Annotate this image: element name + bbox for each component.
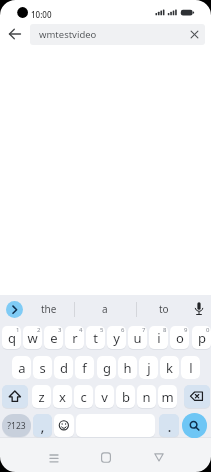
button[interactable]: g	[97, 356, 116, 379]
staticText: 3	[58, 326, 62, 334]
staticText: c	[80, 388, 87, 406]
staticText: x	[59, 388, 66, 406]
button[interactable]: n	[137, 385, 156, 408]
staticText: q	[8, 329, 16, 347]
button[interactable]: t	[86, 326, 105, 349]
button[interactable]: u	[128, 326, 147, 349]
staticText: f	[82, 359, 87, 377]
button[interactable]: d	[54, 356, 73, 379]
staticText: 6	[121, 326, 125, 334]
button[interactable]: j	[139, 356, 158, 379]
staticText: y	[113, 329, 120, 347]
staticText: 8	[163, 326, 167, 334]
button[interactable]	[184, 385, 210, 408]
button[interactable]: s	[33, 356, 52, 379]
staticText: 9	[184, 326, 188, 334]
staticText: to	[159, 302, 169, 316]
button[interactable]: wmtestvideo	[30, 24, 205, 45]
button[interactable]: the	[29, 300, 69, 318]
button[interactable]: f	[75, 356, 94, 379]
button[interactable]: y	[107, 326, 126, 349]
button[interactable]: h	[118, 356, 137, 379]
staticText: s	[39, 359, 46, 377]
staticText: 0	[206, 326, 210, 334]
staticText: o	[176, 329, 184, 347]
staticText: p	[198, 329, 206, 347]
button[interactable]	[96, 448, 116, 468]
button[interactable]	[6, 301, 23, 318]
button[interactable]	[149, 448, 169, 468]
button[interactable]: c	[74, 385, 93, 408]
button[interactable]: p	[192, 326, 211, 349]
staticText: k	[166, 359, 173, 377]
button[interactable]	[54, 414, 74, 437]
button[interactable]: ,	[33, 414, 52, 437]
staticText: wmtestvideo	[39, 28, 97, 41]
staticText: v	[101, 388, 108, 406]
staticText: l	[189, 359, 193, 377]
staticText: a	[102, 302, 108, 316]
button[interactable]: k	[160, 356, 179, 379]
button[interactable]: r	[65, 326, 84, 349]
staticText: 5	[100, 326, 104, 334]
staticText: w	[27, 329, 38, 347]
button[interactable]: x	[53, 385, 72, 408]
staticText: 2	[37, 326, 41, 334]
staticText: u	[133, 329, 142, 347]
staticText: .	[167, 416, 172, 436]
staticText: 4	[79, 326, 83, 334]
staticText: t	[93, 329, 98, 347]
staticText: 1	[16, 326, 20, 334]
staticText: r	[72, 329, 78, 347]
button[interactable]: v	[95, 385, 114, 408]
staticText: ?123	[7, 420, 26, 432]
button[interactable]: o	[170, 326, 189, 349]
staticText: j	[147, 359, 151, 377]
staticText: z	[38, 388, 45, 406]
staticText: a	[18, 359, 26, 377]
button[interactable]: q	[2, 326, 21, 349]
staticText: h	[123, 359, 132, 377]
button[interactable]: w	[23, 326, 42, 349]
button[interactable]: i	[149, 326, 168, 349]
staticText: n	[142, 388, 151, 406]
button[interactable]: e	[44, 326, 63, 349]
button[interactable]: ?123	[2, 414, 31, 437]
staticText: the	[41, 302, 57, 316]
staticText: e	[50, 329, 58, 347]
button[interactable]: m	[158, 385, 177, 408]
staticText: g	[103, 359, 111, 377]
button[interactable]: to	[144, 300, 184, 318]
staticText: ,	[40, 416, 45, 436]
button[interactable]	[2, 385, 28, 408]
button[interactable]: a	[12, 356, 31, 379]
staticText: 7	[142, 326, 146, 334]
button[interactable]	[6, 25, 24, 43]
button[interactable]: b	[116, 385, 135, 408]
staticText: m	[161, 388, 174, 406]
staticText: 10:00	[31, 9, 52, 20]
button[interactable]: a	[85, 300, 125, 318]
staticText: b	[122, 388, 130, 406]
staticText: d	[60, 359, 68, 377]
button[interactable]	[44, 448, 64, 468]
button[interactable]: .	[159, 414, 179, 437]
button[interactable]: l	[181, 356, 200, 379]
button[interactable]	[182, 413, 207, 438]
button[interactable]: z	[32, 385, 51, 408]
staticText: i	[157, 329, 161, 347]
